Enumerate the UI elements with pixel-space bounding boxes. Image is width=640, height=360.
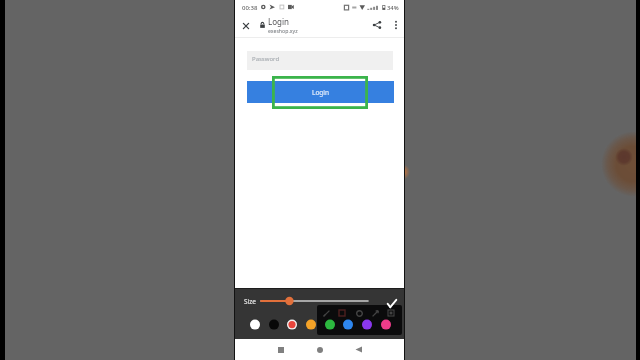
button[interactable]: Colour swatch xyxy=(323,316,337,330)
button[interactable]: Share xyxy=(368,16,386,34)
staticText: Login xyxy=(312,88,330,97)
button[interactable]: Close xyxy=(237,17,255,35)
staticText: 00:38 xyxy=(242,4,258,12)
button[interactable]: Oval xyxy=(352,306,366,320)
button[interactable]: Colour swatch xyxy=(341,316,355,330)
button[interactable]: Colour swatch xyxy=(248,316,262,330)
button[interactable]: Recents xyxy=(272,341,289,358)
staticText: 34% xyxy=(387,4,399,12)
button[interactable]: Rectangle xyxy=(335,306,349,320)
button[interactable]: Done xyxy=(384,296,400,312)
button[interactable]: Colour swatch xyxy=(379,316,393,330)
button[interactable]: Arrow xyxy=(368,306,382,320)
button[interactable]: Colour swatch xyxy=(304,316,318,330)
button[interactable]: Back xyxy=(350,341,367,358)
button[interactable]: Size slider xyxy=(260,296,369,306)
button[interactable]: Password xyxy=(247,51,393,70)
staticText: Size xyxy=(244,297,256,306)
staticText: Password xyxy=(252,55,280,63)
button[interactable]: More options xyxy=(387,16,404,33)
staticText: exeshop.xyz xyxy=(268,27,298,34)
button[interactable]: Colour swatch xyxy=(360,316,374,330)
staticText: Login xyxy=(268,16,289,27)
button[interactable]: Colour swatch xyxy=(285,316,299,330)
button[interactable]: Home xyxy=(311,341,328,358)
button[interactable]: Login xyxy=(247,81,394,103)
button[interactable]: Crop xyxy=(384,306,398,320)
button[interactable]: Colour swatch xyxy=(267,316,281,330)
button[interactable]: Pen xyxy=(319,306,333,320)
